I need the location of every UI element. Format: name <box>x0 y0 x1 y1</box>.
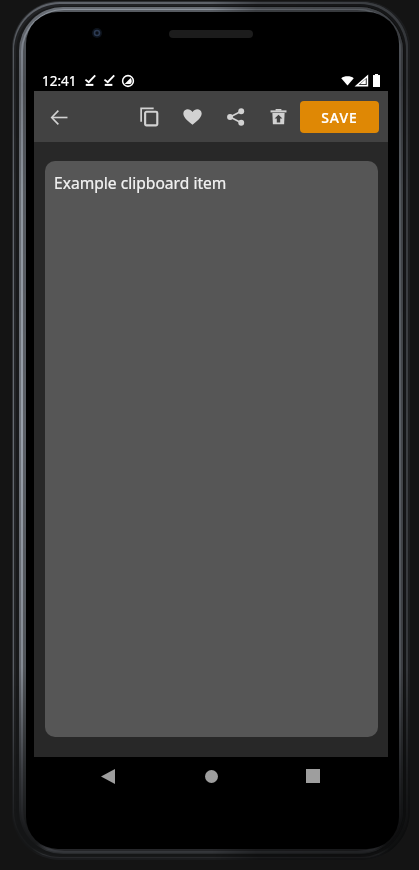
button[interactable]: Recents <box>289 756 337 796</box>
staticText: Example clipboard item <box>54 172 227 193</box>
staticText: SAVE <box>321 108 358 127</box>
button[interactable]: Back <box>84 756 132 796</box>
button[interactable]: Restore <box>257 95 300 138</box>
button[interactable]: SAVE <box>300 101 379 133</box>
button[interactable]: Back <box>34 92 84 142</box>
button[interactable]: Favorite <box>171 95 214 138</box>
button[interactable]: Copy <box>128 95 171 138</box>
button[interactable]: Example clipboard item <box>45 161 378 737</box>
staticText: 12:41 <box>42 72 77 90</box>
button[interactable]: Share <box>214 95 257 138</box>
button[interactable]: Home <box>187 756 235 796</box>
